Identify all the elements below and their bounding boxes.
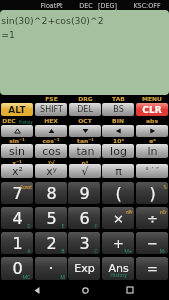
staticText: 10ˣ: [113, 137, 124, 144]
button[interactable]: sin: [1, 144, 33, 158]
button[interactable]: SHIFT: [35, 103, 67, 116]
staticText: tan: [76, 145, 95, 158]
button[interactable]: ln: [136, 144, 168, 158]
staticText: SHIFT: [40, 105, 63, 114]
staticText: 0: [12, 259, 23, 278]
staticText: E: [61, 222, 65, 229]
staticText: −: [147, 236, 158, 251]
staticText: sin(30)^2+cos(30)^2: [1, 15, 104, 26]
button[interactable]: Exp: [68, 257, 100, 280]
staticText: 9: [79, 184, 90, 203]
staticText: 5: [46, 209, 57, 228]
button[interactable]: DEL: [69, 103, 101, 116]
staticText: DEC: [2, 117, 16, 124]
staticText: ×: [113, 211, 124, 226]
button[interactable]: ·: [35, 257, 67, 280]
staticText: nCr: [160, 209, 167, 215]
staticText: sin⁻¹: [9, 137, 25, 144]
staticText: OCT: [78, 117, 92, 124]
button[interactable]: (: [102, 182, 134, 204]
button[interactable]: Back: [27, 281, 47, 299]
button[interactable]: Down: [69, 125, 101, 137]
staticText: 2: [46, 234, 57, 253]
staticText: π: [115, 165, 122, 178]
button[interactable]: x²: [1, 164, 33, 178]
button[interactable]: 8: [35, 182, 67, 204]
button[interactable]: 0: [1, 257, 33, 280]
button[interactable]: =: [136, 257, 168, 280]
button[interactable]: Left: [102, 125, 134, 137]
staticText: FloatPt: [40, 2, 63, 9]
staticText: ): [149, 184, 156, 203]
staticText: 7: [12, 184, 23, 203]
staticText: B: [61, 247, 65, 254]
button[interactable]: +: [102, 232, 134, 254]
button[interactable]: Up: [35, 125, 67, 137]
staticText: ° ′ ″: [145, 167, 159, 176]
button[interactable]: BS: [102, 103, 134, 116]
button[interactable]: 5: [35, 207, 67, 229]
staticText: 8: [46, 184, 57, 203]
staticText: Const: [20, 184, 32, 190]
button[interactable]: ALT: [1, 103, 33, 116]
button[interactable]: Recents: [120, 281, 140, 299]
staticText: =1: [1, 29, 15, 40]
button[interactable]: 6: [68, 207, 100, 229]
staticText: M+: [124, 247, 132, 254]
staticText: DEL: [77, 105, 93, 114]
staticText: DEC: [79, 2, 93, 9]
staticText: (: [115, 184, 122, 203]
button[interactable]: ÷: [136, 207, 168, 229]
staticText: %: [163, 184, 167, 190]
staticText: Ans: [108, 262, 129, 275]
button[interactable]: xʸ: [35, 164, 67, 178]
button[interactable]: π: [102, 164, 134, 178]
staticText: +: [113, 236, 124, 251]
staticText: D: [27, 222, 31, 229]
button[interactable]: tan: [69, 144, 101, 158]
staticText: KSC:OFF: [133, 2, 161, 9]
staticText: x⁻¹: [12, 159, 22, 166]
button[interactable]: −: [136, 232, 168, 254]
staticText: ʸ√: [48, 159, 55, 166]
button[interactable]: cos: [35, 144, 67, 158]
button[interactable]: 7: [1, 182, 33, 204]
staticText: MENU: [142, 95, 162, 102]
staticText: MC: [22, 273, 31, 280]
button[interactable]: Scroll up: [1, 125, 33, 137]
button[interactable]: Right: [136, 125, 168, 137]
staticText: BS: [113, 105, 124, 114]
staticText: ·: [48, 259, 54, 278]
button[interactable]: ): [136, 182, 168, 204]
button[interactable]: log: [102, 144, 134, 158]
staticText: A: [27, 247, 31, 254]
staticText: cos⁻¹: [42, 137, 60, 144]
staticText: x²: [12, 165, 23, 178]
staticText: BIN: [112, 117, 124, 124]
button[interactable]: 4: [1, 207, 33, 229]
button[interactable]: 1: [1, 232, 33, 254]
staticText: =: [147, 261, 158, 276]
staticText: tan⁻¹: [77, 137, 94, 144]
button[interactable]: 3: [68, 232, 100, 254]
staticText: M: [60, 273, 65, 280]
staticText: History: [110, 272, 127, 279]
button[interactable]: ° ′ ″: [136, 164, 168, 178]
staticText: FSE: [45, 95, 58, 102]
staticText: n!: [81, 159, 89, 166]
staticText: 6: [79, 209, 90, 228]
staticText: History: [18, 119, 33, 125]
staticText: 3: [79, 234, 90, 253]
button[interactable]: √: [69, 164, 101, 178]
button[interactable]: ×: [102, 207, 134, 229]
button[interactable]: 9: [68, 182, 100, 204]
button[interactable]: Home: [75, 281, 95, 299]
staticText: ALT: [8, 105, 26, 115]
staticText: ln: [147, 145, 158, 158]
staticText: HEX: [44, 117, 58, 124]
staticText: [DEG]: [98, 2, 117, 9]
button[interactable]: 2: [35, 232, 67, 254]
staticText: Exp: [74, 262, 95, 275]
button[interactable]: Ans: [102, 257, 134, 280]
button[interactable]: CLR: [136, 103, 168, 116]
